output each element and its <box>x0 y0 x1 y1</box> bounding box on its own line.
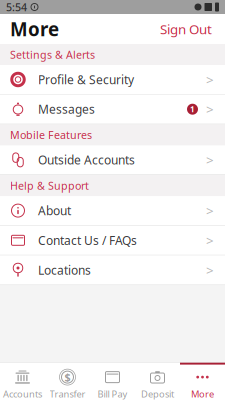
staticText: 5:54 <box>6 0 27 14</box>
button[interactable]: About <box>0 196 225 226</box>
staticText: > <box>206 151 214 169</box>
staticText: About <box>38 203 71 218</box>
button[interactable]: Profile & Security <box>0 65 225 95</box>
staticText: Deposit <box>141 388 174 400</box>
staticText: $ <box>64 370 70 384</box>
staticText: > <box>206 231 214 249</box>
button[interactable]: Contact Us / FAQs <box>0 226 225 255</box>
staticText: Contact Us / FAQs <box>38 232 137 248</box>
staticText: More <box>191 388 214 400</box>
staticText: Sign Out <box>160 20 212 38</box>
button[interactable]: Outside Accounts <box>0 145 225 175</box>
staticText: > <box>206 71 214 88</box>
button[interactable]: Bill Pay <box>90 362 135 400</box>
staticText: Messages <box>38 101 95 117</box>
button[interactable]: Deposit <box>135 362 180 400</box>
button[interactable]: Messages <box>0 95 225 124</box>
button[interactable]: $ <box>45 362 90 400</box>
staticText: Profile & Security <box>38 71 134 87</box>
staticText: Accounts <box>3 388 42 400</box>
button[interactable]: Sign Out <box>157 13 215 45</box>
button[interactable]: More <box>180 362 225 400</box>
staticText: Mobile Features <box>10 128 92 142</box>
staticText: Outside Accounts <box>38 152 135 168</box>
staticText: > <box>206 202 214 219</box>
staticText: Settings & Alerts <box>10 47 95 62</box>
staticText: Locations <box>38 262 91 278</box>
staticText: More <box>10 17 59 41</box>
staticText: Bill Pay <box>97 388 127 400</box>
button[interactable]: Locations <box>0 255 225 285</box>
staticText: > <box>206 261 214 279</box>
staticText: Help & Support <box>10 178 89 193</box>
staticText: Transfer <box>49 388 85 400</box>
staticText: > <box>206 100 214 118</box>
button[interactable]: Accounts <box>0 362 45 400</box>
staticText: 1 <box>190 104 195 114</box>
